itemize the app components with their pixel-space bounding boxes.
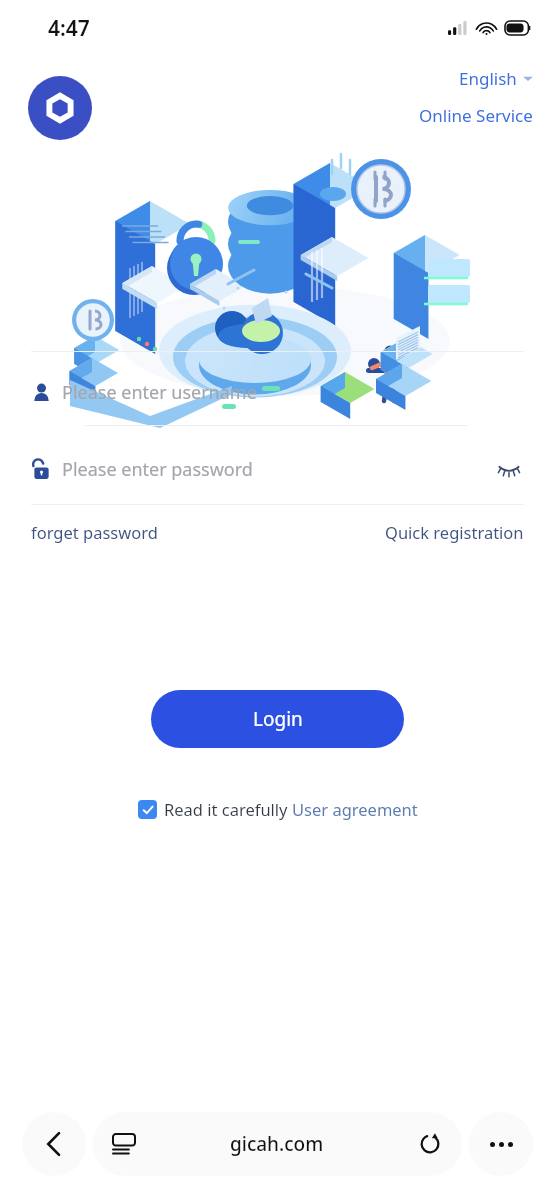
button[interactable]: Show password [494, 454, 524, 484]
staticText: 4:47 [48, 14, 90, 43]
button[interactable]: Quick registration [385, 517, 524, 547]
button[interactable]: Read it carefully [138, 794, 418, 824]
button[interactable]: Please enter username [0, 352, 555, 425]
staticText: Please enter password [62, 457, 253, 482]
button[interactable]: forget password [31, 517, 158, 547]
staticText: Online Service [419, 104, 533, 127]
button[interactable]: Please enter password [0, 426, 555, 504]
button[interactable]: Online Service [417, 101, 535, 130]
staticText: Read it carefully [164, 798, 292, 820]
button[interactable]: App logo [28, 76, 92, 140]
staticText: Login [253, 706, 303, 732]
button[interactable]: More options [469, 1112, 533, 1176]
staticText: User agreement [292, 798, 418, 820]
button[interactable]: Reader view [93, 1112, 462, 1176]
staticText: gicah.com [230, 1131, 324, 1157]
staticText: forget password [31, 521, 158, 543]
staticText: Please enter username [62, 380, 257, 405]
staticText: English [459, 67, 517, 90]
staticText: Quick registration [385, 521, 524, 543]
button[interactable]: English [457, 64, 535, 93]
button[interactable]: Login [151, 690, 404, 748]
button[interactable]: Back [22, 1112, 86, 1176]
button[interactable]: Reader view [111, 1131, 137, 1157]
button[interactable]: Reload [416, 1130, 444, 1158]
